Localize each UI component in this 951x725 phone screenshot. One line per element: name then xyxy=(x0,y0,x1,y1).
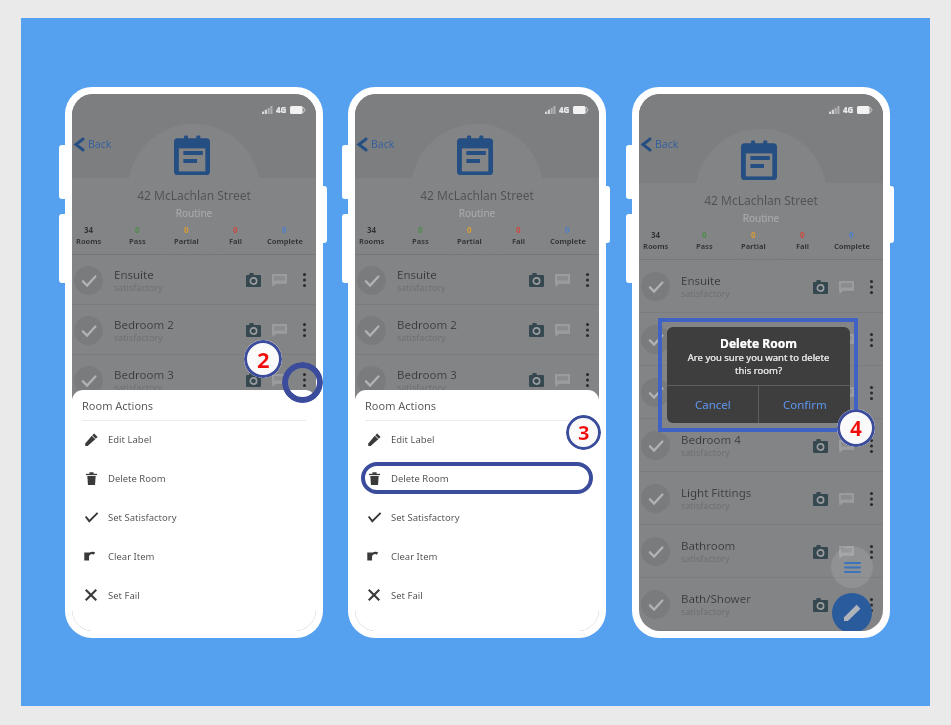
button[interactable] xyxy=(639,525,883,577)
button[interactable]: Edit Label xyxy=(78,423,310,455)
button[interactable] xyxy=(639,313,883,365)
button[interactable]: Add note xyxy=(833,539,859,565)
button[interactable]: Back xyxy=(358,137,395,151)
button[interactable] xyxy=(72,555,316,604)
button[interactable]: Take photo xyxy=(807,274,833,300)
button[interactable] xyxy=(72,455,316,504)
button[interactable]: Take photo xyxy=(807,433,833,459)
button[interactable]: More options xyxy=(860,329,882,351)
button[interactable] xyxy=(355,305,599,354)
button[interactable]: Take photo xyxy=(523,317,549,343)
button[interactable] xyxy=(639,472,883,524)
button[interactable]: Take photo xyxy=(240,317,266,343)
button[interactable]: Add note xyxy=(549,317,575,343)
button[interactable]: More options xyxy=(860,541,882,563)
button[interactable]: Add note xyxy=(833,327,859,353)
button[interactable] xyxy=(639,578,883,630)
button[interactable]: Take photo xyxy=(240,367,266,393)
button[interactable]: Delete Room xyxy=(78,462,310,494)
button[interactable]: More options xyxy=(576,419,598,441)
button[interactable]: Take photo xyxy=(807,592,833,618)
button[interactable] xyxy=(72,405,316,454)
button[interactable]: Add note xyxy=(266,367,292,393)
button[interactable]: Take photo xyxy=(523,367,549,393)
button[interactable]: More options xyxy=(860,435,882,457)
button[interactable]: Set Satisfactory xyxy=(361,501,593,533)
button[interactable]: Add note xyxy=(266,417,292,443)
button[interactable]: Set Fail xyxy=(361,579,593,611)
button[interactable]: Set Satisfactory xyxy=(78,501,310,533)
button[interactable]: Add note xyxy=(833,380,859,406)
button[interactable]: Take photo xyxy=(807,539,833,565)
button[interactable]: Take photo xyxy=(240,417,266,443)
button[interactable]: Add note xyxy=(549,367,575,393)
button[interactable]: Add note xyxy=(833,433,859,459)
button[interactable]: More options xyxy=(860,276,882,298)
button[interactable]: Take photo xyxy=(523,467,549,493)
button[interactable] xyxy=(355,555,599,604)
button[interactable] xyxy=(639,366,883,418)
button[interactable]: Edit Label xyxy=(361,423,593,455)
button[interactable]: Delete Room xyxy=(361,462,593,494)
button[interactable]: Clear Item xyxy=(361,540,593,572)
button[interactable] xyxy=(72,255,316,304)
button[interactable]: More options xyxy=(576,269,598,291)
button[interactable]: More options xyxy=(576,469,598,491)
button[interactable]: Add note xyxy=(833,486,859,512)
button[interactable]: Back xyxy=(75,137,112,151)
button[interactable]: More options xyxy=(293,269,315,291)
button[interactable]: Menu xyxy=(831,546,873,588)
button[interactable]: Add note xyxy=(549,267,575,293)
button[interactable]: More options xyxy=(860,488,882,510)
button[interactable] xyxy=(355,455,599,504)
button[interactable]: More options xyxy=(293,319,315,341)
button[interactable] xyxy=(72,305,316,354)
button[interactable]: Take photo xyxy=(807,380,833,406)
button[interactable]: Confirm xyxy=(759,386,850,423)
button[interactable] xyxy=(355,505,599,554)
button[interactable]: More options xyxy=(293,419,315,441)
button[interactable]: More options xyxy=(576,369,598,391)
button[interactable]: Take photo xyxy=(240,267,266,293)
button[interactable]: Add note xyxy=(833,592,859,618)
button[interactable] xyxy=(355,355,599,404)
button[interactable]: Edit xyxy=(832,593,872,631)
button[interactable]: More options xyxy=(293,369,315,391)
button[interactable]: Take photo xyxy=(807,486,833,512)
button[interactable] xyxy=(639,419,883,471)
button[interactable]: Take photo xyxy=(523,267,549,293)
button[interactable]: More options xyxy=(860,382,882,404)
button[interactable]: Add note xyxy=(549,467,575,493)
button[interactable]: Add note xyxy=(833,274,859,300)
button[interactable] xyxy=(72,355,316,404)
button[interactable]: Set Fail xyxy=(78,579,310,611)
button[interactable]: Clear Item xyxy=(78,540,310,572)
button[interactable]: More options xyxy=(860,594,882,616)
button[interactable] xyxy=(355,255,599,304)
button[interactable] xyxy=(355,405,599,454)
button[interactable]: Add note xyxy=(266,267,292,293)
button[interactable]: Take photo xyxy=(523,417,549,443)
button[interactable]: Add note xyxy=(266,317,292,343)
button[interactable]: Cancel xyxy=(667,386,758,423)
button[interactable]: Add note xyxy=(549,417,575,443)
button[interactable] xyxy=(639,260,883,312)
button[interactable]: More options xyxy=(576,319,598,341)
button[interactable]: Back xyxy=(642,137,679,151)
